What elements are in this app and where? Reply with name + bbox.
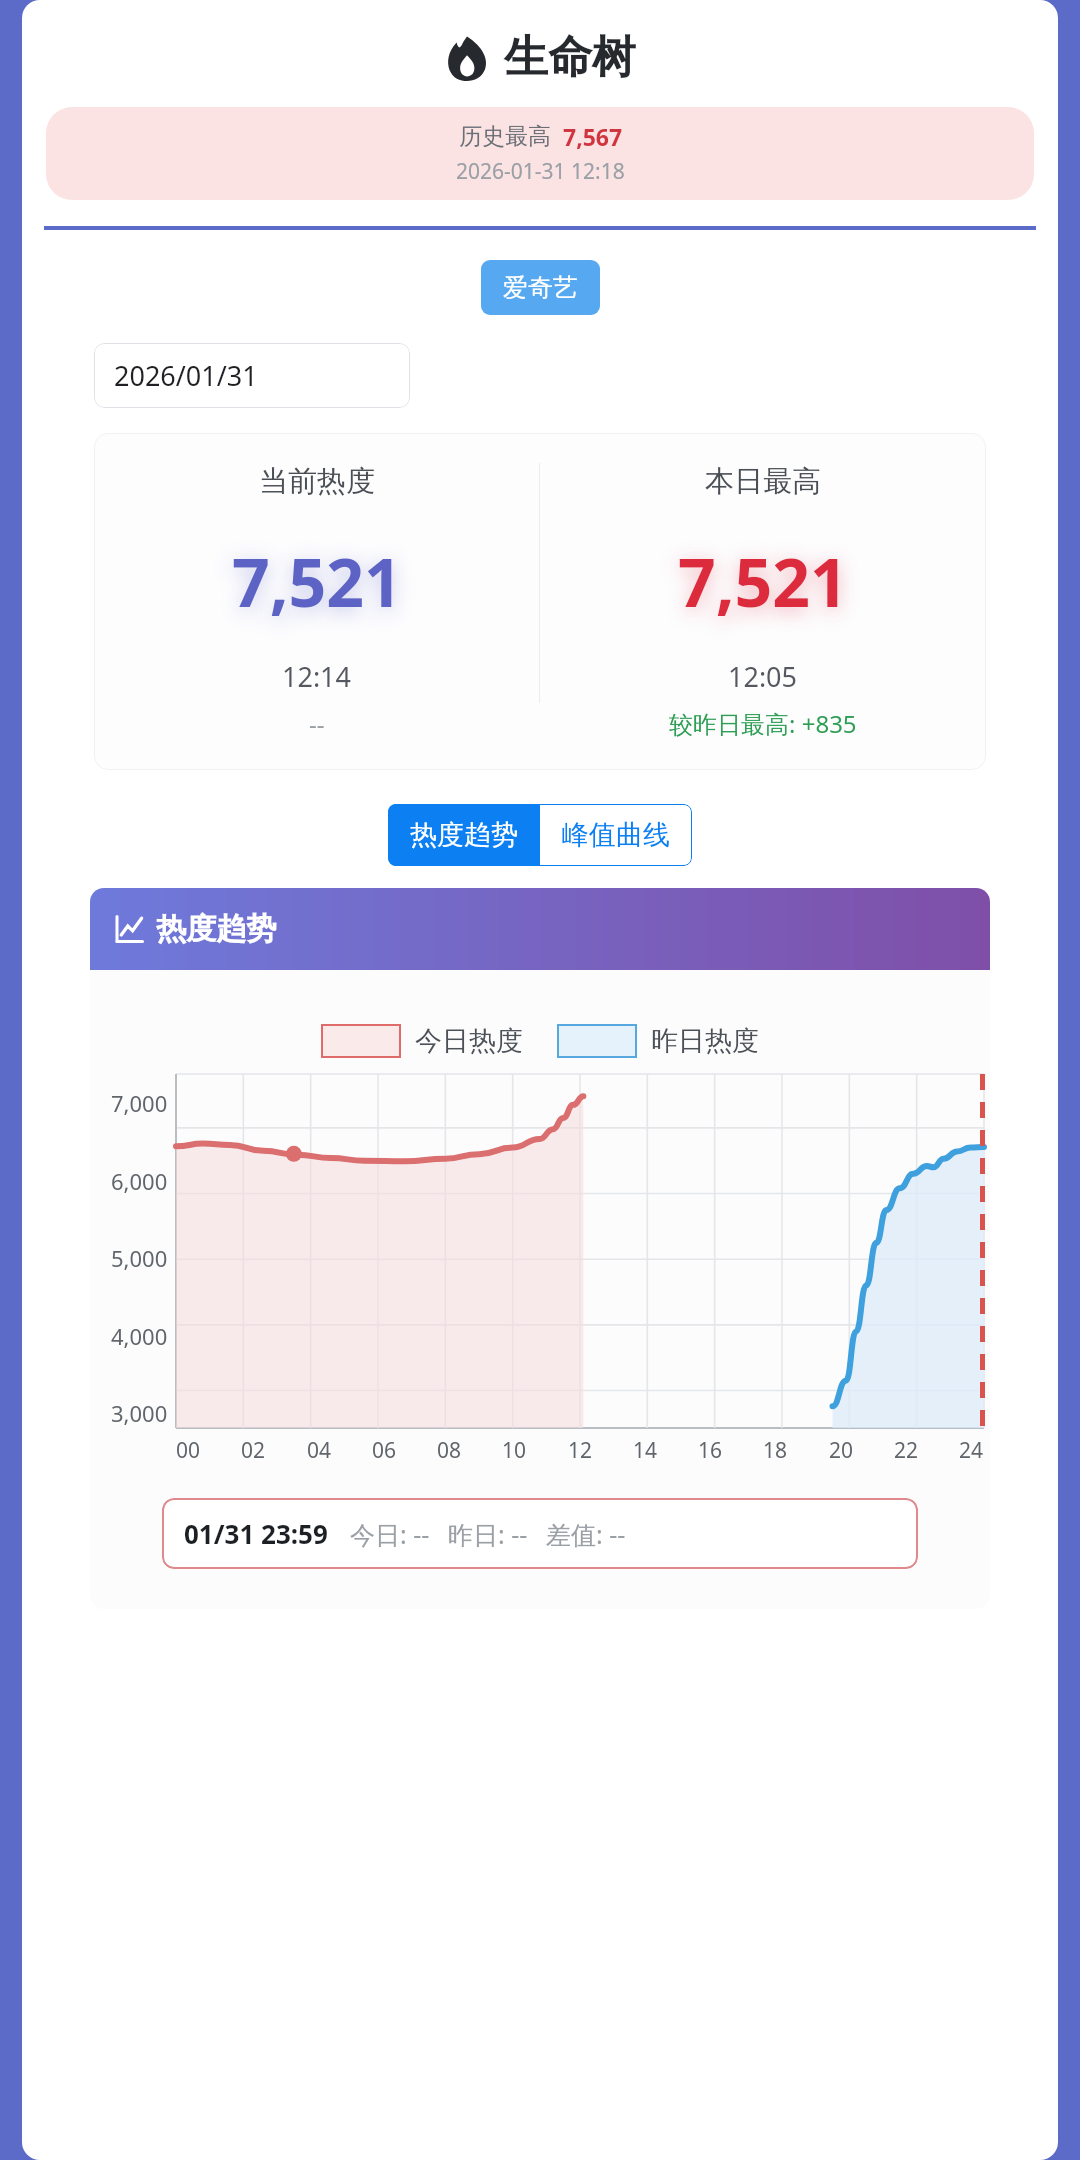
staticText: 昨日: -- — [448, 1517, 528, 1551]
staticText: 04 — [307, 1436, 332, 1465]
staticText: 今日: -- — [350, 1517, 430, 1551]
button[interactable]: 本日最高 — [540, 463, 986, 740]
button[interactable]: 热度趋势 — [388, 804, 540, 866]
staticText: 7,521 — [678, 536, 848, 626]
staticText: 12:05 — [728, 658, 798, 695]
staticText: 历史最高 — [459, 122, 551, 151]
staticText: 热度趋势 — [156, 910, 276, 948]
staticText: 22 — [894, 1436, 919, 1465]
staticText: 峰值曲线 — [562, 818, 670, 852]
button[interactable]: 历史最高 — [46, 107, 1034, 200]
staticText: 12 — [568, 1436, 593, 1465]
staticText: 5,000 — [111, 1243, 168, 1273]
staticText: 6,000 — [111, 1166, 168, 1196]
staticText: 较昨日最高: +835 — [669, 707, 857, 740]
staticText: 当前热度 — [259, 463, 375, 500]
staticText: 今日热度 — [415, 1024, 523, 1058]
staticText: 生命树 — [504, 30, 636, 85]
staticText: 本日最高 — [705, 463, 821, 500]
staticText: 4,000 — [111, 1321, 168, 1351]
staticText: 昨日热度 — [651, 1024, 759, 1058]
staticText: 08 — [437, 1436, 462, 1465]
staticText: 12:14 — [282, 658, 352, 695]
staticText: 00 — [176, 1436, 201, 1465]
staticText: 06 — [372, 1436, 397, 1465]
staticText: 02 — [241, 1436, 266, 1465]
staticText: 7,567 — [563, 121, 623, 152]
staticText: 01/31 23:59 — [184, 1516, 328, 1551]
button[interactable]: 01/31 23:59 — [162, 1498, 918, 1569]
staticText: 2026/01/31 — [114, 357, 258, 394]
button[interactable]: 2026/01/31 — [94, 343, 410, 408]
staticText: 14 — [633, 1436, 658, 1465]
staticText: 10 — [502, 1436, 527, 1465]
button[interactable]: 当前热度 — [94, 463, 539, 740]
staticText: 18 — [763, 1436, 788, 1465]
staticText: 16 — [698, 1436, 723, 1465]
staticText: 24 — [959, 1436, 984, 1465]
staticText: 3,000 — [111, 1398, 168, 1428]
staticText: 7,000 — [111, 1088, 168, 1118]
button[interactable]: 峰值曲线 — [540, 804, 692, 866]
staticText: 热度趋势 — [410, 818, 518, 852]
staticText: 7,521 — [232, 536, 402, 626]
staticText: 爱奇艺 — [503, 272, 578, 303]
staticText: 20 — [829, 1436, 854, 1465]
staticText: -- — [309, 707, 325, 740]
staticText: 差值: -- — [546, 1517, 626, 1551]
staticText: 2026-01-31 12:18 — [456, 157, 625, 186]
button[interactable]: 爱奇艺 — [481, 260, 600, 315]
